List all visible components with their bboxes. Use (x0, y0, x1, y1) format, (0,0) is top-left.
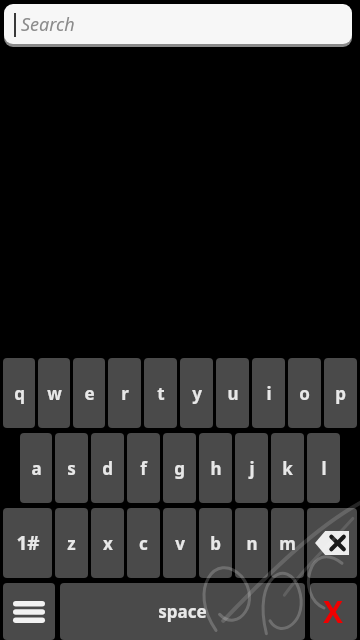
button[interactable]: f (127, 433, 160, 503)
button[interactable]: k (271, 433, 304, 503)
button[interactable]: o (288, 358, 321, 428)
staticText: z (67, 532, 76, 555)
staticText: r (121, 382, 129, 405)
button[interactable]: w (38, 358, 70, 428)
staticText: f (140, 457, 147, 480)
staticText: s (67, 457, 76, 480)
staticText: g (174, 457, 185, 480)
button[interactable]: n (235, 508, 268, 578)
button[interactable]: Search (4, 4, 352, 44)
button[interactable]: b (199, 508, 232, 578)
staticText: j (249, 457, 255, 480)
button[interactable]: l (307, 433, 340, 503)
button[interactable]: a (20, 433, 52, 503)
staticText: d (102, 457, 113, 480)
staticText: n (246, 532, 258, 555)
staticText: u (227, 382, 239, 405)
button[interactable]: 1# (3, 508, 52, 578)
button[interactable]: e (73, 358, 105, 428)
button[interactable]: j (235, 433, 268, 503)
button[interactable]: p (324, 358, 357, 428)
staticText: a (31, 457, 42, 480)
button[interactable]: x (91, 508, 124, 578)
staticText: t (157, 382, 165, 405)
button[interactable]: r (108, 358, 141, 428)
staticText: 1# (16, 530, 40, 556)
button[interactable]: c (127, 508, 160, 578)
button[interactable]: z (55, 508, 88, 578)
staticText: e (84, 382, 95, 405)
staticText: v (175, 532, 185, 555)
staticText: y (192, 382, 202, 405)
staticText: x (103, 532, 113, 555)
staticText: space (158, 600, 207, 623)
staticText: l (321, 457, 327, 480)
staticText: q (14, 382, 25, 405)
button[interactable]: Close keyboard (310, 583, 357, 640)
button[interactable]: y (180, 358, 213, 428)
staticText: b (210, 532, 221, 555)
staticText: h (210, 457, 222, 480)
button[interactable]: g (163, 433, 196, 503)
button[interactable]: t (144, 358, 177, 428)
button[interactable]: i (252, 358, 285, 428)
button[interactable]: space (60, 583, 305, 640)
staticText: Search (21, 12, 75, 37)
button[interactable]: m (271, 508, 304, 578)
staticText: i (266, 382, 272, 405)
staticText: w (47, 382, 62, 405)
button[interactable]: q (3, 358, 35, 428)
staticText: p (335, 382, 346, 405)
button[interactable]: h (199, 433, 232, 503)
staticText: o (299, 382, 310, 405)
button[interactable]: Backspace (307, 508, 357, 578)
button[interactable]: d (91, 433, 124, 503)
staticText: m (279, 532, 296, 555)
button[interactable]: v (163, 508, 196, 578)
staticText: X (323, 591, 344, 632)
staticText: c (139, 532, 148, 555)
button[interactable]: s (55, 433, 88, 503)
button[interactable]: u (216, 358, 249, 428)
staticText: 10:55 (256, 0, 292, 18)
button[interactable]: Keyboard menu (3, 583, 55, 640)
staticText: k (282, 457, 293, 480)
